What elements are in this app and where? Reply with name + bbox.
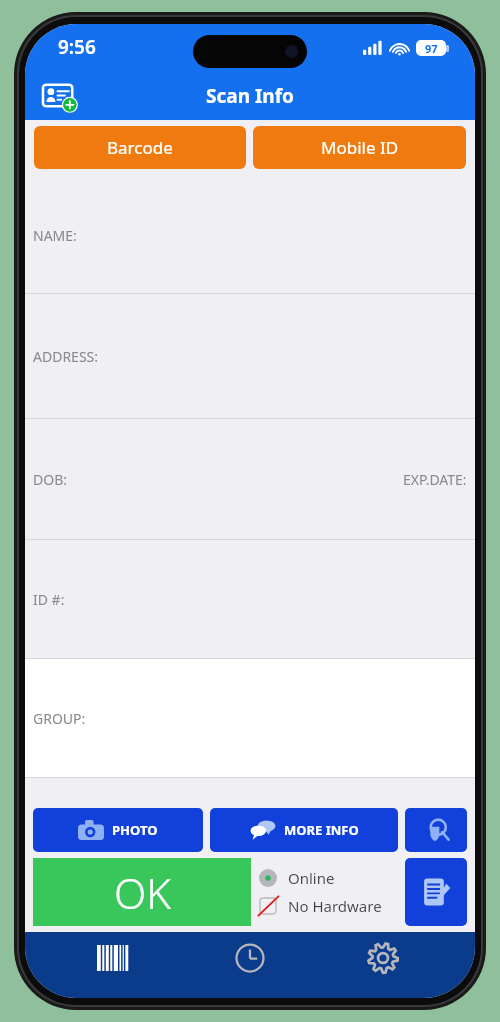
button[interactable]: ADDRESS: [33, 294, 467, 418]
staticText: Scan Info [206, 83, 294, 109]
staticText: 9:56 [58, 34, 96, 60]
button[interactable]: DOB: [33, 419, 467, 539]
staticText: GROUP: [33, 709, 86, 728]
staticText: NAME: [33, 226, 77, 245]
button[interactable]: Add scan [37, 73, 83, 119]
staticText: 97 [425, 41, 438, 56]
staticText: MORE INFO [284, 821, 359, 839]
staticText: OK [114, 864, 171, 921]
button[interactable]: MORE INFO [210, 808, 398, 852]
button[interactable]: Verify [405, 808, 467, 852]
staticText: EXP.DATE: [403, 470, 467, 489]
button[interactable]: Report [405, 858, 467, 926]
button[interactable]: PHOTO [33, 808, 203, 852]
staticText: Barcode [107, 136, 173, 159]
button[interactable]: History [210, 936, 290, 980]
button[interactable]: ID #: [33, 540, 467, 658]
button[interactable]: OK [33, 858, 251, 926]
staticText: ID #: [33, 590, 65, 609]
button[interactable]: GROUP: [33, 659, 467, 777]
button[interactable]: Mobile ID [253, 126, 466, 169]
staticText: No Hardware [288, 896, 382, 916]
button[interactable]: Scan [78, 936, 158, 980]
staticText: PHOTO [112, 821, 158, 839]
staticText: DOB: [33, 470, 68, 489]
staticText: ADDRESS: [33, 347, 99, 366]
button[interactable]: Settings [343, 936, 423, 980]
staticText: Online [288, 868, 335, 888]
button[interactable]: Barcode [34, 126, 246, 169]
button[interactable]: NAME: [33, 177, 467, 293]
staticText: Mobile ID [321, 136, 399, 159]
